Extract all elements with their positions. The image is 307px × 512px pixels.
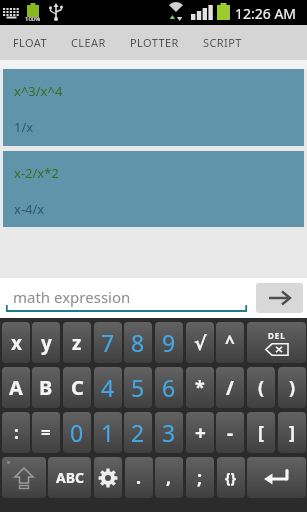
staticText: A xyxy=(9,374,23,401)
staticText: 2 xyxy=(131,417,145,448)
staticText: SCRIPT xyxy=(203,35,242,50)
button[interactable]: √ xyxy=(186,322,214,363)
button[interactable]: CLEAR xyxy=(59,25,118,60)
staticText: [ xyxy=(258,420,264,445)
staticText: x^3/x^4 xyxy=(14,82,63,100)
button[interactable]: 9 xyxy=(155,322,183,363)
staticText: 1/x xyxy=(14,118,34,136)
button[interactable] xyxy=(256,283,303,313)
button[interactable] xyxy=(2,457,46,498)
button[interactable]: 6 xyxy=(155,367,183,408)
staticText: CLEAR xyxy=(71,35,106,50)
staticText: * xyxy=(195,375,205,400)
button[interactable]: z xyxy=(63,322,91,363)
button[interactable]: ) xyxy=(278,367,306,408)
staticText: z xyxy=(72,330,82,356)
staticText: √ xyxy=(194,332,207,354)
button[interactable]: A xyxy=(2,367,30,408)
button[interactable]: 7 xyxy=(94,322,122,363)
staticText: ( xyxy=(258,375,265,400)
button[interactable]: x-2/x*2 xyxy=(3,151,304,227)
staticText: / xyxy=(226,375,234,401)
button[interactable]: 5 xyxy=(124,367,152,408)
staticText: 6 xyxy=(162,372,176,403)
staticText: x-2/x*2 xyxy=(14,164,59,182)
button[interactable]: C xyxy=(63,367,91,408)
staticText: y xyxy=(41,330,52,356)
staticText: 1 xyxy=(101,417,115,448)
button[interactable]: SCRIPT xyxy=(191,25,254,60)
staticText: C xyxy=(71,374,84,401)
staticText: DEL xyxy=(268,330,286,341)
staticText: : xyxy=(14,421,19,444)
staticText: + xyxy=(195,420,206,446)
button[interactable]: , xyxy=(155,457,183,498)
button[interactable]: 4 xyxy=(94,367,122,408)
button[interactable]: x xyxy=(2,322,30,363)
staticText: . xyxy=(136,465,142,490)
button[interactable]: = xyxy=(32,412,60,453)
button[interactable]: [ xyxy=(247,412,275,453)
staticText: ^ xyxy=(225,331,235,354)
button[interactable]: {} xyxy=(217,457,245,498)
button[interactable]: 0 xyxy=(63,412,91,453)
button[interactable]: FLOAT xyxy=(1,25,59,60)
button[interactable]: 3 xyxy=(155,412,183,453)
button[interactable]: y xyxy=(32,322,60,363)
staticText: B xyxy=(39,374,53,401)
staticText: x-4/x xyxy=(14,200,45,218)
button[interactable]: ( xyxy=(247,367,275,408)
staticText: = xyxy=(41,421,51,444)
staticText: ) xyxy=(289,375,296,400)
button[interactable]: . xyxy=(125,457,153,498)
staticText: ] xyxy=(289,420,295,445)
staticText: , xyxy=(166,465,172,490)
button[interactable]: DEL xyxy=(247,322,306,363)
button[interactable]: x^3/x^4 xyxy=(3,69,304,146)
button[interactable]: 2 xyxy=(124,412,152,453)
staticText: 5 xyxy=(131,372,145,403)
button[interactable]: ^ xyxy=(216,322,244,363)
staticText: 100% xyxy=(25,15,41,23)
button[interactable]: / xyxy=(216,367,244,408)
staticText: {} xyxy=(225,468,237,487)
staticText: PLOTTER xyxy=(130,35,179,50)
button[interactable]: ABC xyxy=(48,457,91,498)
button[interactable]: + xyxy=(186,412,214,453)
button[interactable]: 1 xyxy=(94,412,122,453)
staticText: FLOAT xyxy=(13,35,47,50)
staticText: 0 xyxy=(70,417,84,448)
staticText: 8 xyxy=(131,327,145,358)
staticText: math expression xyxy=(13,287,131,307)
button[interactable] xyxy=(94,457,122,498)
button[interactable]: ; xyxy=(186,457,214,498)
staticText: - xyxy=(227,420,234,446)
button[interactable]: B xyxy=(32,367,60,408)
button[interactable]: - xyxy=(216,412,244,453)
button[interactable]: * xyxy=(186,367,214,408)
button[interactable]: PLOTTER xyxy=(118,25,191,60)
staticText: 3 xyxy=(162,417,176,448)
staticText: 4 xyxy=(101,372,115,403)
button[interactable] xyxy=(247,457,306,498)
staticText: 7 xyxy=(101,327,115,358)
staticText: ABC xyxy=(56,468,84,487)
staticText: ; xyxy=(197,465,203,490)
button[interactable]: ] xyxy=(278,412,306,453)
staticText: x xyxy=(11,330,22,356)
button[interactable]: 8 xyxy=(124,322,152,363)
staticText: 9 xyxy=(162,327,176,358)
button[interactable]: : xyxy=(2,412,30,453)
staticText: 12:26 AM xyxy=(235,4,297,23)
